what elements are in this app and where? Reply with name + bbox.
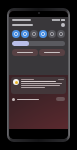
button[interactable]: Brightness: [12, 41, 65, 46]
button[interactable]: Battery saver: [57, 30, 65, 38]
button[interactable]: Bluetooth: [39, 30, 47, 38]
button[interactable]: Wi-Fi: [12, 30, 20, 38]
button[interactable]: Rotate: [30, 30, 38, 38]
button[interactable]: Device controls: [12, 49, 38, 56]
button[interactable]: Media output: [39, 49, 65, 56]
button[interactable]: Clear all: [56, 97, 65, 101]
button[interactable]: [11, 77, 66, 94]
button[interactable]: Settings: [61, 23, 65, 27]
button[interactable]: Sound: [21, 30, 29, 38]
button[interactable]: [12, 98, 39, 101]
button[interactable]: Flashlight: [48, 30, 56, 38]
